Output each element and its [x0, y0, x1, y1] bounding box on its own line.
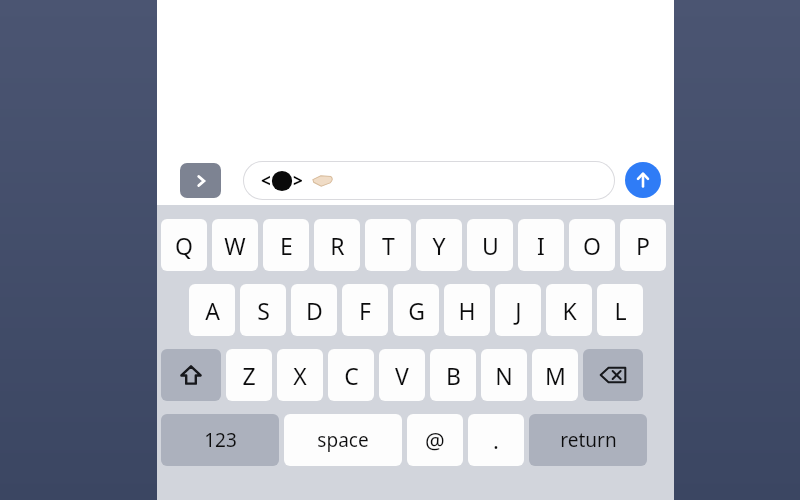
- staticText: F: [359, 295, 371, 326]
- button[interactable]: M: [532, 349, 578, 401]
- button[interactable]: S: [240, 284, 286, 336]
- button[interactable]: X: [277, 349, 323, 401]
- staticText: @: [425, 425, 445, 455]
- button[interactable]: T: [365, 219, 411, 271]
- staticText: M: [545, 360, 566, 391]
- button[interactable]: space: [284, 414, 402, 466]
- button[interactable]: Q: [161, 219, 207, 271]
- staticText: Q: [175, 230, 193, 261]
- staticText: <: [261, 169, 271, 192]
- staticText: J: [515, 295, 522, 326]
- button[interactable]: .: [468, 414, 524, 466]
- button[interactable]: N: [481, 349, 527, 401]
- button[interactable]: C: [328, 349, 374, 401]
- staticText: 123: [204, 427, 237, 453]
- button[interactable]: U: [467, 219, 513, 271]
- staticText: H: [458, 295, 476, 326]
- button[interactable]: L: [597, 284, 643, 336]
- button[interactable]: P: [620, 219, 666, 271]
- staticText: T: [382, 230, 395, 261]
- staticText: I: [537, 230, 545, 261]
- button[interactable]: R: [314, 219, 360, 271]
- button[interactable]: 123: [161, 414, 279, 466]
- staticText: E: [280, 230, 293, 261]
- button[interactable]: O: [569, 219, 615, 271]
- button[interactable]: F: [342, 284, 388, 336]
- button[interactable]: <: [243, 161, 615, 200]
- staticText: .: [493, 425, 499, 455]
- button[interactable]: Z: [226, 349, 272, 401]
- staticText: R: [330, 230, 345, 261]
- button[interactable]: I: [518, 219, 564, 271]
- button[interactable]: Expand: [180, 163, 221, 198]
- button[interactable]: B: [430, 349, 476, 401]
- button[interactable]: Send: [625, 162, 661, 198]
- staticText: Y: [432, 230, 446, 261]
- button[interactable]: V: [379, 349, 425, 401]
- button[interactable]: A: [189, 284, 235, 336]
- staticText: K: [562, 295, 577, 326]
- button[interactable]: D: [291, 284, 337, 336]
- button[interactable]: Shift: [161, 349, 221, 401]
- staticText: G: [408, 295, 425, 326]
- staticText: A: [205, 295, 220, 326]
- button[interactable]: return: [529, 414, 647, 466]
- button[interactable]: Backspace: [583, 349, 643, 401]
- staticText: L: [614, 295, 627, 326]
- staticText: O: [583, 230, 601, 261]
- staticText: C: [344, 360, 359, 391]
- staticText: V: [395, 360, 409, 391]
- staticText: D: [306, 295, 323, 326]
- staticText: B: [446, 360, 461, 391]
- button[interactable]: H: [444, 284, 490, 336]
- button[interactable]: K: [546, 284, 592, 336]
- staticText: return: [560, 427, 617, 453]
- button[interactable]: Y: [416, 219, 462, 271]
- button[interactable]: @: [407, 414, 463, 466]
- staticText: P: [636, 230, 650, 261]
- button[interactable]: G: [393, 284, 439, 336]
- button[interactable]: W: [212, 219, 258, 271]
- staticText: >: [293, 169, 303, 192]
- button[interactable]: J: [495, 284, 541, 336]
- staticText: S: [257, 295, 270, 326]
- staticText: space: [317, 427, 369, 453]
- button[interactable]: E: [263, 219, 309, 271]
- staticText: X: [293, 360, 307, 391]
- staticText: Z: [242, 360, 256, 391]
- staticText: N: [495, 360, 513, 391]
- staticText: W: [224, 230, 246, 261]
- staticText: U: [482, 230, 499, 261]
